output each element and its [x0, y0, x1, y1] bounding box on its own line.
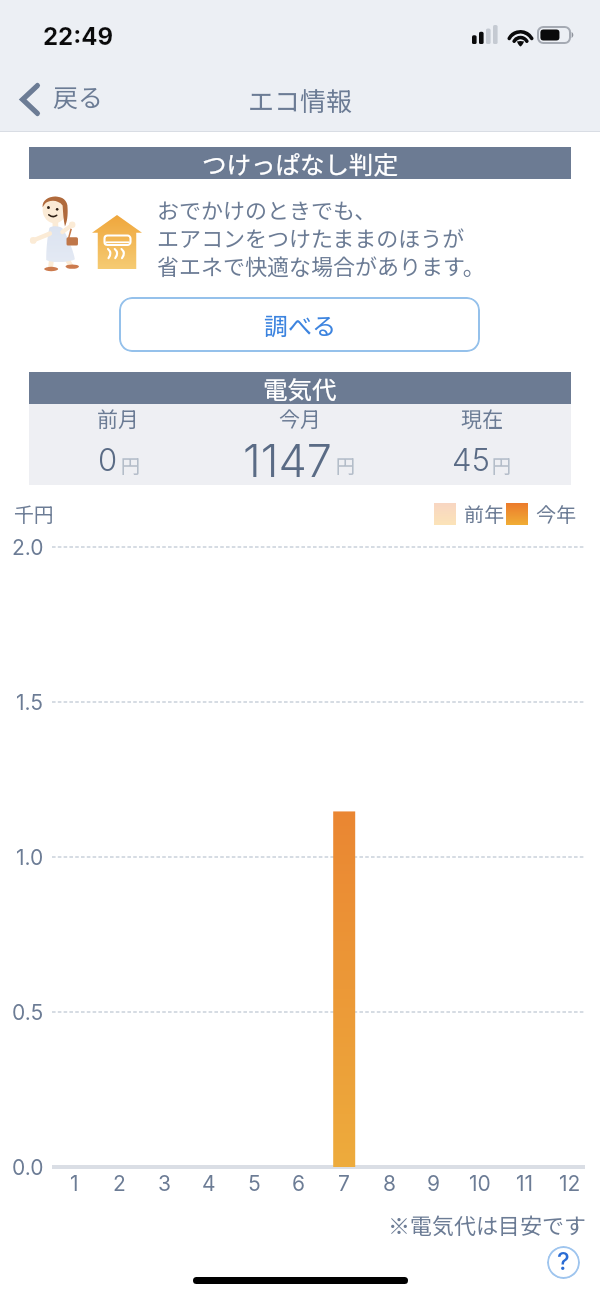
- staticText: 0.5: [12, 1000, 44, 1025]
- staticText: 4: [202, 1171, 216, 1196]
- staticText: 2.0: [12, 535, 44, 560]
- staticText: 9: [427, 1171, 441, 1196]
- staticText: 前月: [97, 403, 139, 433]
- staticText: エコ情報: [248, 81, 353, 119]
- staticText: 10: [469, 1171, 491, 1196]
- staticText: 12: [559, 1171, 581, 1196]
- staticText: 電気代: [263, 371, 337, 403]
- staticText: 千円: [14, 499, 54, 528]
- staticText: 円: [336, 451, 356, 479]
- staticText: 8: [383, 1171, 396, 1196]
- staticText: 調べる: [264, 307, 336, 342]
- button[interactable]: 調べる: [119, 297, 480, 352]
- staticText: 22:49: [43, 22, 114, 51]
- staticText: 戻る: [53, 78, 104, 114]
- staticText: 今年: [536, 499, 576, 528]
- staticText: 省エネで快適な場合があります。: [157, 249, 485, 281]
- staticText: 6: [292, 1171, 306, 1196]
- staticText: 1: [70, 1171, 79, 1196]
- staticText: 1.0: [16, 845, 44, 870]
- staticText: ※電気代は目安です: [388, 1208, 587, 1240]
- staticText: おでかけのときでも、: [157, 193, 377, 225]
- staticText: 2: [113, 1171, 126, 1196]
- staticText: 現在: [461, 403, 503, 433]
- staticText: つけっぱなし判定: [202, 146, 398, 178]
- staticText: 45: [452, 441, 490, 479]
- staticText: 0.0: [12, 1155, 44, 1180]
- button[interactable]: 戻る: [20, 76, 104, 122]
- staticText: 0: [98, 441, 118, 479]
- staticText: 1.5: [16, 690, 44, 715]
- staticText: 7: [338, 1171, 350, 1196]
- staticText: ?: [557, 1247, 570, 1276]
- staticText: 5: [248, 1171, 261, 1196]
- button[interactable]: ヘルプ: [547, 1246, 580, 1279]
- staticText: 3: [158, 1171, 171, 1196]
- staticText: エアコンをつけたままのほうが: [157, 221, 465, 253]
- staticText: 11: [516, 1171, 534, 1196]
- staticText: 前年: [464, 499, 504, 528]
- staticText: 1147: [243, 433, 332, 487]
- staticText: 円: [121, 451, 141, 479]
- staticText: 円: [492, 451, 512, 479]
- staticText: 今月: [279, 403, 321, 433]
